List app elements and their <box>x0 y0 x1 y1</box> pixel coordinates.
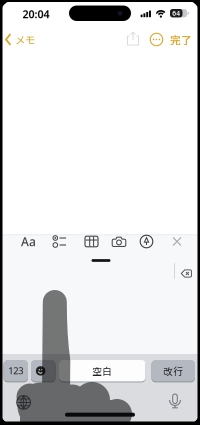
button[interactable]: 音声入力 <box>169 393 181 408</box>
staticText: 123 <box>8 365 23 377</box>
button[interactable]: 表 <box>85 236 98 247</box>
button[interactable]: 完了 <box>170 32 192 47</box>
button[interactable]: マークアップ <box>140 235 153 248</box>
button[interactable]: Aa <box>21 233 36 249</box>
staticText: メモ <box>15 32 35 47</box>
button[interactable]: 改行 <box>151 360 195 381</box>
button[interactable]: 削除 <box>181 269 192 278</box>
button[interactable]: メモ <box>5 32 35 47</box>
button[interactable]: その他 <box>150 33 163 46</box>
staticText: 空白 <box>92 364 112 378</box>
button[interactable]: 共有 <box>127 31 139 45</box>
button[interactable]: カメラ <box>112 237 126 247</box>
button[interactable]: 123 <box>3 360 28 381</box>
staticText: Aa <box>21 233 36 249</box>
staticText: 64 <box>172 9 180 18</box>
button[interactable]: 絵文字 <box>31 360 55 381</box>
button[interactable]: 次のキーボード <box>17 396 30 409</box>
button[interactable]: 空白 <box>59 360 145 381</box>
button[interactable]: 閉じる <box>172 237 181 246</box>
staticText: 改行 <box>163 364 183 378</box>
staticText: 20:04 <box>22 7 49 21</box>
button[interactable]: チェックリスト <box>52 235 66 247</box>
staticText: 完了 <box>170 32 192 47</box>
